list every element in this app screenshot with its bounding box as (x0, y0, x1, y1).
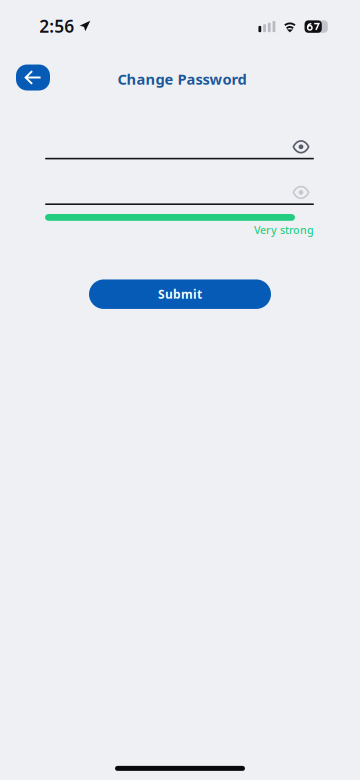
staticText: Change Password (117, 69, 246, 89)
button[interactable]: Show confirmed password (288, 181, 314, 203)
button[interactable]: Submit (89, 279, 271, 309)
staticText: 2:56 (39, 14, 74, 37)
button[interactable]: Show new password (288, 136, 314, 158)
button[interactable]: Back (16, 64, 50, 90)
staticText: Submit (158, 286, 202, 302)
staticText: Very strong (254, 223, 314, 237)
